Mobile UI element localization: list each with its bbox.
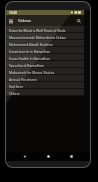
button[interactable]: Euras Hadith in Ramadhan — [6, 54, 84, 61]
staticText: Maksutveit for Maroq Shukra — [9, 70, 54, 74]
button[interactable]: Others — [6, 89, 84, 96]
button[interactable]: Menu — [6, 16, 16, 26]
button[interactable]: Search — [74, 16, 84, 26]
button[interactable]: Annual Pandrome — [6, 75, 84, 82]
button[interactable]: Eurasi bunch in Ramadhan — [6, 47, 84, 54]
staticText: Annual Pandrome — [9, 77, 37, 81]
staticText: Euras Hadith in Ramadhan — [9, 56, 51, 60]
staticText: 10:30 — [9, 11, 18, 15]
button[interactable]: Recents — [67, 152, 76, 161]
staticText: Depeche Mode a Wolf Heart of Node — [9, 28, 66, 32]
button[interactable]: Depeche Mode a Wolf Heart of Node — [6, 26, 84, 33]
staticText: Others — [9, 91, 20, 95]
staticText: Mohammed Alipalli Rushing — [9, 42, 53, 46]
staticText: Sart hem — [9, 84, 24, 88]
staticText: Specchia di Ramadhan — [9, 63, 44, 67]
button[interactable]: Maksutveit for Maroq Shukra — [6, 68, 84, 75]
staticText: Eurasi bunch in Ramadhan — [9, 49, 51, 53]
button[interactable]: Home — [44, 152, 53, 161]
button[interactable]: Sart hem — [6, 82, 84, 89]
staticText: Videos — [18, 18, 32, 24]
button[interactable]: Back — [20, 152, 29, 161]
staticText: Maccana banyak Maharshima Sebag — [9, 35, 66, 39]
button[interactable]: Maccana banyak Maharshima Sebag — [6, 33, 84, 40]
button[interactable]: Mohammed Alipalli Rushing — [6, 40, 84, 47]
button[interactable]: Specchia di Ramadhan — [6, 61, 84, 68]
